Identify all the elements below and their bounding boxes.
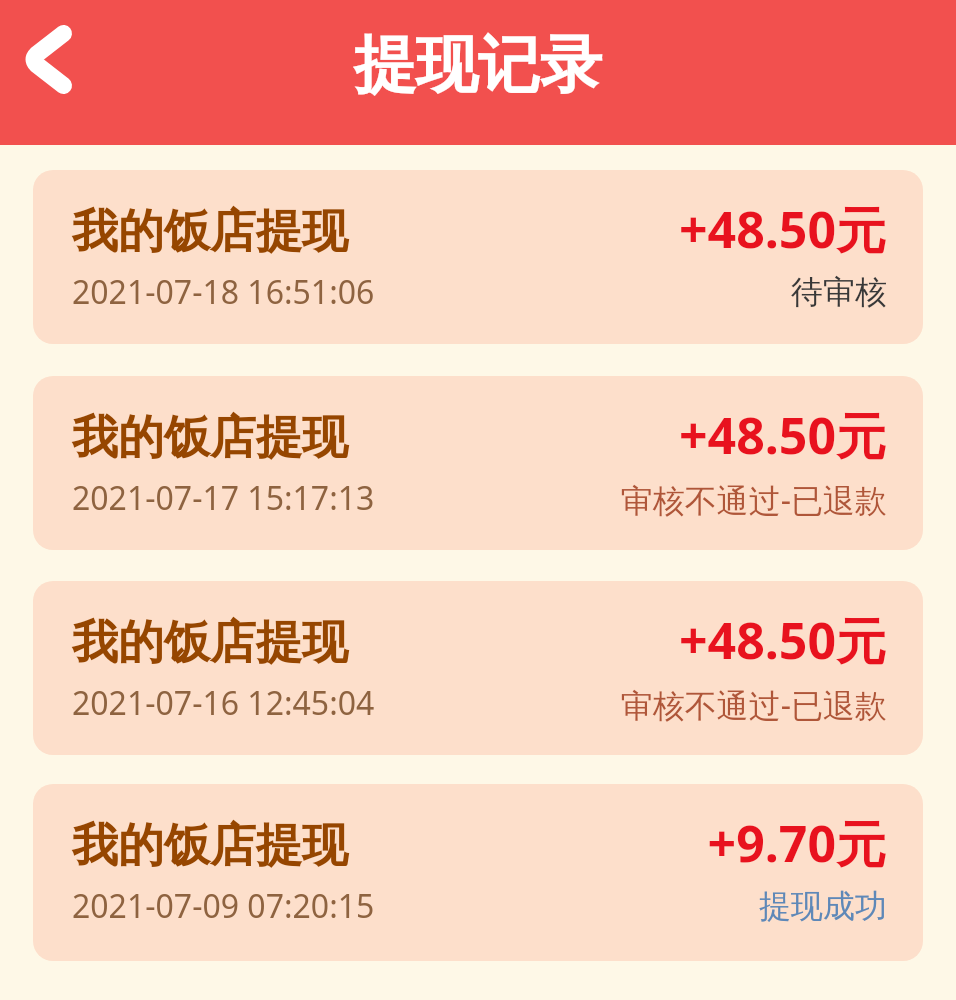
button[interactable]: Back	[0, 0, 100, 118]
staticText: 待审核	[791, 272, 887, 312]
staticText: 我的饭店提现	[72, 203, 348, 261]
staticText: 2021-07-09 07:20:15	[72, 884, 375, 928]
button[interactable]: 我的饭店提现	[33, 581, 923, 755]
staticText: 提现记录	[354, 26, 602, 104]
staticText: +9.70元	[707, 809, 886, 877]
staticText: +48.50元	[678, 606, 886, 674]
staticText: 2021-07-17 15:17:13	[72, 476, 375, 520]
staticText: +48.50元	[678, 401, 886, 469]
staticText: +48.50元	[678, 195, 886, 263]
staticText: 我的饭店提现	[72, 817, 348, 875]
staticText: 提现成功	[759, 886, 887, 926]
staticText: 我的饭店提现	[72, 409, 348, 467]
button[interactable]: 我的饭店提现	[33, 784, 923, 961]
button[interactable]: 我的饭店提现	[33, 376, 923, 550]
staticText: 我的饭店提现	[72, 614, 348, 672]
staticText: 审核不通过-已退款	[620, 683, 887, 727]
staticText: 2021-07-16 12:45:04	[72, 681, 375, 725]
button[interactable]: 我的饭店提现	[33, 170, 923, 344]
staticText: 审核不通过-已退款	[620, 478, 887, 522]
staticText: 2021-07-18 16:51:06	[72, 270, 375, 314]
